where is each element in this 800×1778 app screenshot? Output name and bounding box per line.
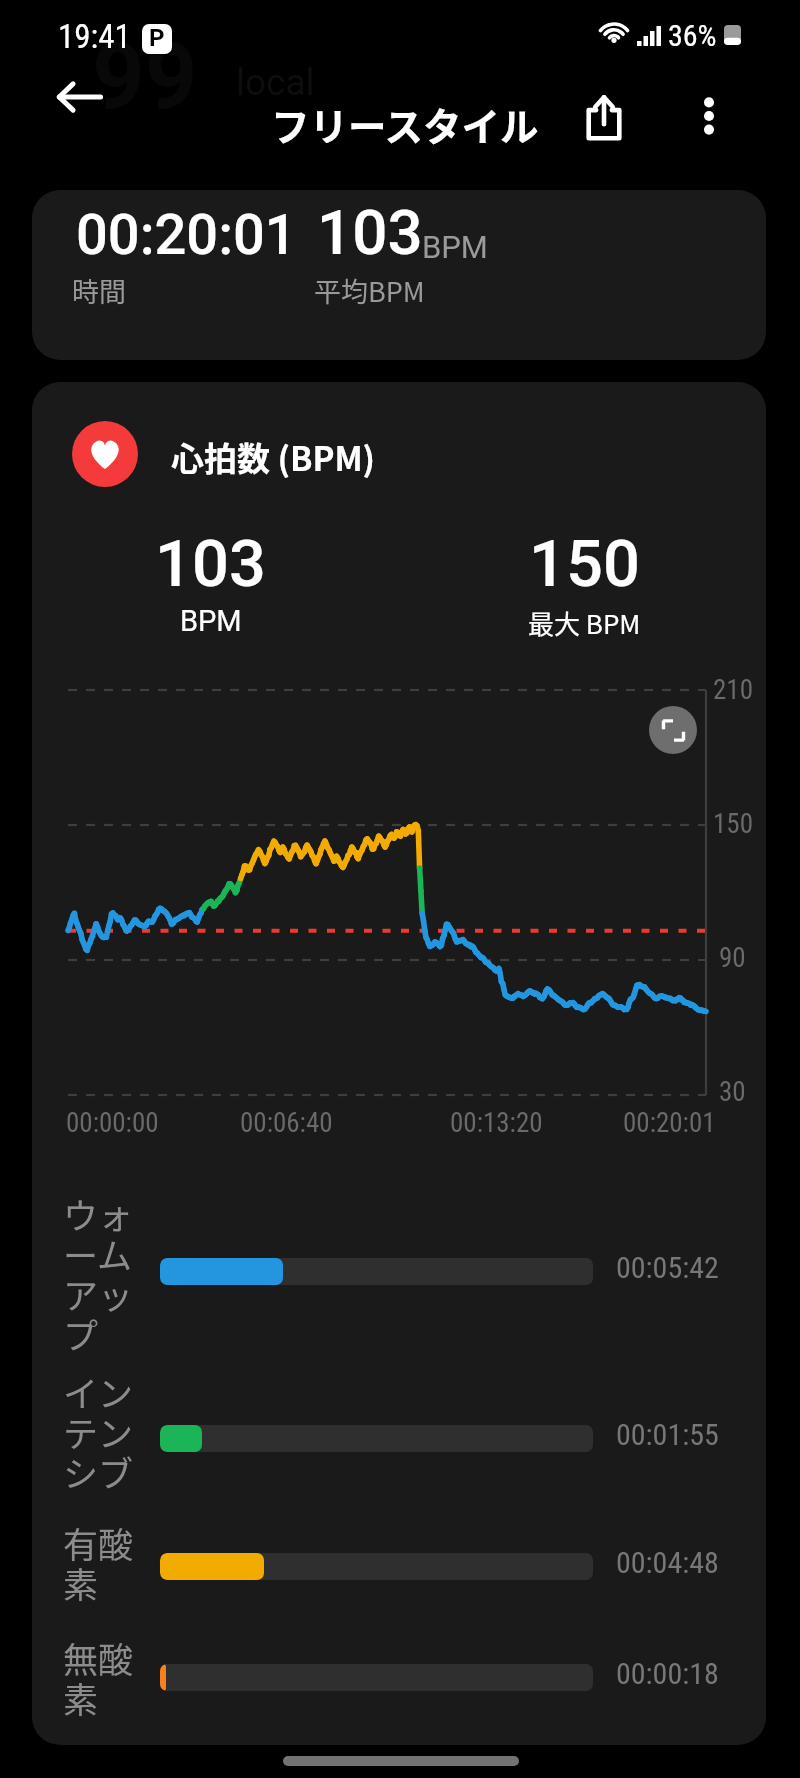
staticText: BPM <box>422 229 488 265</box>
staticText: 90 <box>719 942 746 974</box>
staticText: 無酸 素 <box>63 1632 134 1723</box>
staticText: 心拍数 (BPM) <box>171 433 376 481</box>
staticText: 00:20:01 <box>76 202 297 268</box>
staticText: 最大 BPM <box>528 604 641 642</box>
staticText: 有酸 素 <box>63 1517 134 1608</box>
staticText: 30 <box>719 1076 746 1108</box>
staticText: 00:01:55 <box>616 1417 719 1452</box>
staticText: 00:20:01 <box>623 1107 716 1139</box>
staticText: local <box>236 61 315 104</box>
staticText: 99 <box>92 23 198 131</box>
staticText: 150 <box>713 808 753 840</box>
button[interactable]: More options <box>681 88 737 144</box>
staticText: 103 <box>317 196 423 269</box>
staticText: 19:41 <box>58 17 131 56</box>
staticText: 00:06:40 <box>240 1107 333 1139</box>
staticText: 平均BPM <box>314 271 425 310</box>
staticText: 00:05:42 <box>616 1250 719 1285</box>
staticText: 00:00:00 <box>66 1107 159 1139</box>
staticText: BPM <box>180 604 242 638</box>
button[interactable]: Expand chart <box>649 706 697 754</box>
staticText: 150 <box>529 526 640 602</box>
staticText: 時間 <box>72 271 126 310</box>
staticText: ウォ ーム アッ プ <box>63 1188 134 1359</box>
staticText: 00:04:48 <box>616 1545 719 1580</box>
button[interactable]: Back <box>49 67 109 127</box>
staticText: P <box>149 24 165 52</box>
staticText: 00:13:20 <box>450 1107 543 1139</box>
staticText: 00:00:18 <box>616 1656 719 1691</box>
staticText: イン テン シブ <box>63 1366 134 1497</box>
staticText: 210 <box>713 674 753 706</box>
staticText: フリースタイル <box>271 96 539 152</box>
staticText: 103 <box>155 526 266 602</box>
staticText: 36% <box>668 18 717 53</box>
button[interactable]: Share <box>574 88 634 148</box>
